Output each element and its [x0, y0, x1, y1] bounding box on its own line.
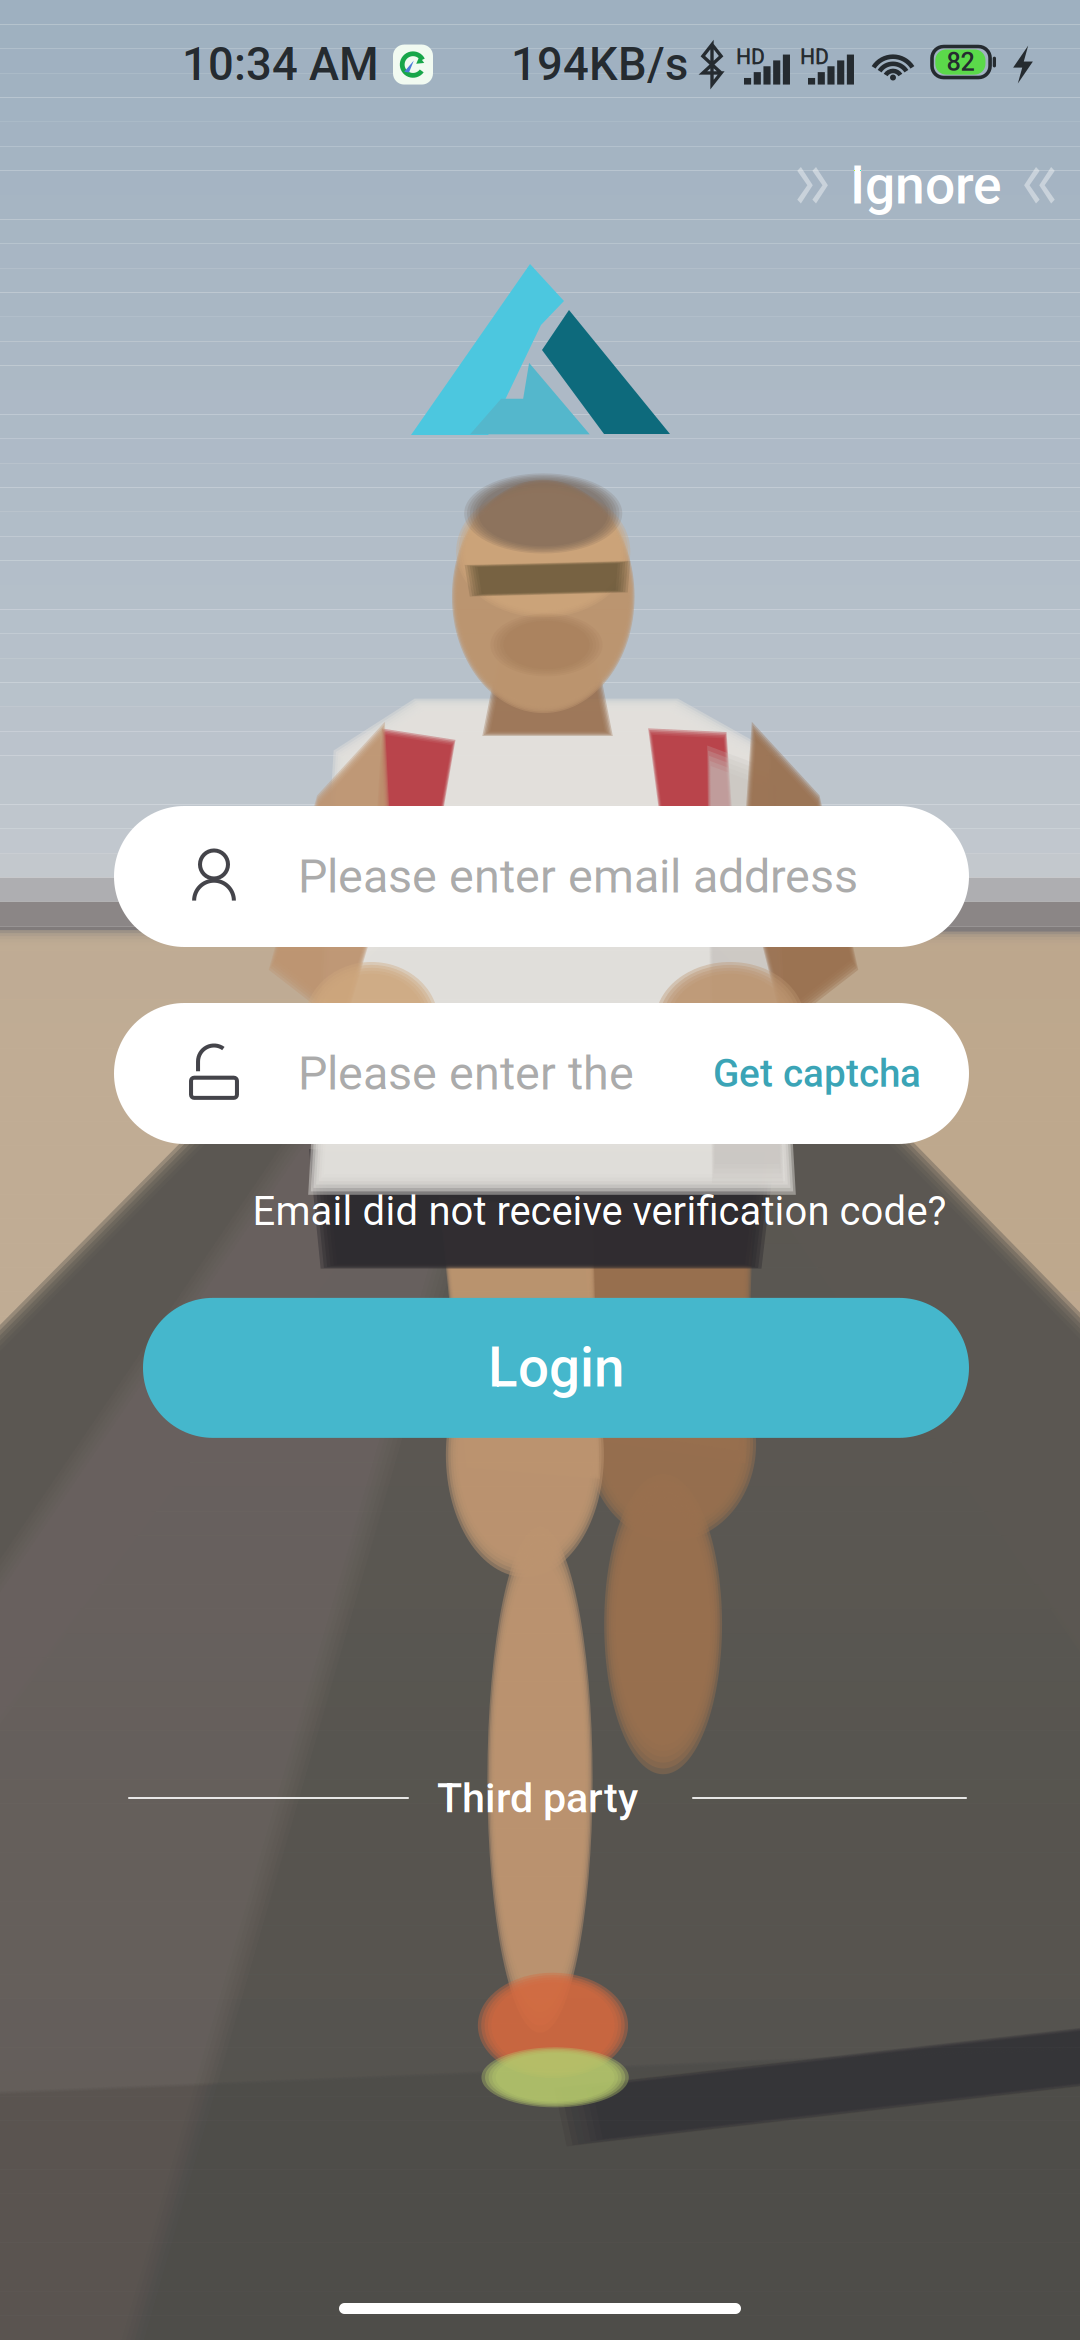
staticText: Ignore: [850, 154, 1002, 216]
staticText: Get captcha: [713, 1051, 921, 1096]
staticText: 82: [946, 47, 974, 77]
staticText: Third party: [437, 1774, 638, 1822]
button[interactable]: Email did not receive verification code?: [252, 1180, 946, 1243]
staticText: Email did not receive verification code?: [252, 1188, 946, 1235]
staticText: HD: [736, 45, 765, 70]
button[interactable]: Please enter the: [114, 1003, 651, 1144]
staticText: Please enter email address: [298, 849, 858, 904]
button[interactable]: Please enter email address: [114, 806, 969, 947]
staticText: 10:34 AM: [182, 38, 379, 91]
button[interactable]: Login: [143, 1298, 969, 1438]
staticText: Login: [488, 1336, 624, 1400]
button[interactable]: Get captcha: [651, 1003, 969, 1144]
staticText: HD: [800, 45, 829, 70]
staticText: Please enter the: [298, 1046, 634, 1101]
button[interactable]: Ignore: [790, 136, 1062, 234]
staticText: 194KB/s: [511, 38, 688, 91]
